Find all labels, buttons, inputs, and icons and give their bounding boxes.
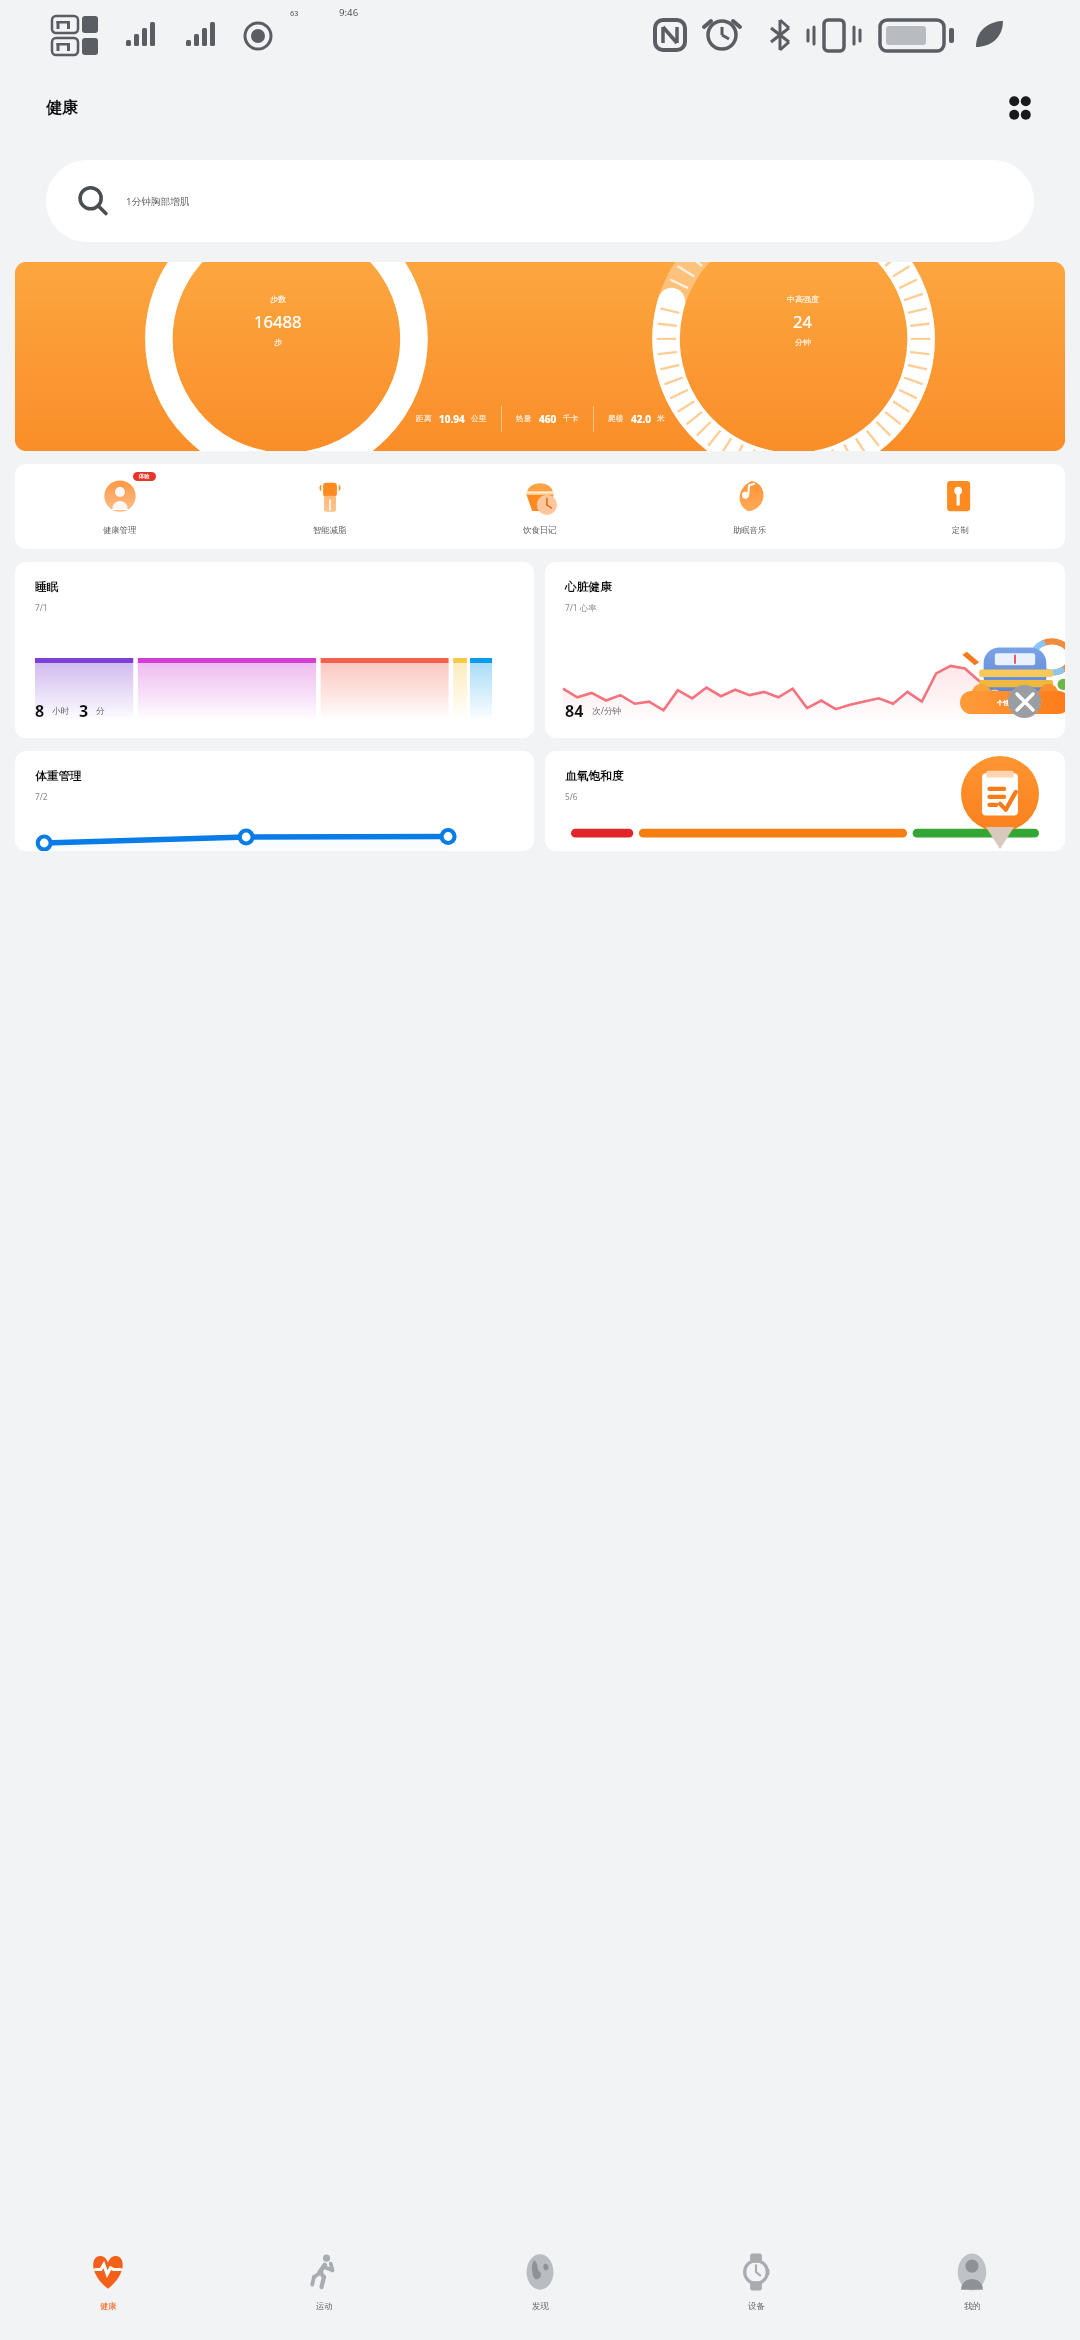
staticText: 心脏健康	[565, 580, 612, 595]
staticText: 分	[96, 706, 105, 717]
staticText: 中高强度	[787, 294, 819, 304]
button[interactable]: 设备	[648, 2222, 864, 2340]
staticText: 5/6	[565, 791, 578, 802]
staticText: 健康	[46, 98, 78, 118]
staticText: 次/分钟	[592, 705, 622, 717]
button[interactable]: 定制	[855, 475, 1065, 549]
staticText: 智能减脂	[313, 525, 347, 535]
staticText: 24	[793, 310, 813, 333]
staticText: 10.94	[439, 412, 465, 426]
staticText: 爬楼	[608, 414, 624, 424]
button[interactable]: 运动	[216, 2222, 432, 2340]
button[interactable]: 智能减脂	[225, 475, 435, 549]
staticText: 1分钟胸部增肌	[126, 195, 190, 208]
staticText: 63	[290, 8, 299, 18]
button[interactable]: Health survey	[961, 756, 1039, 851]
staticText: 小时	[52, 706, 70, 717]
button[interactable]: Close ad	[1008, 685, 1041, 718]
button[interactable]: 体验	[15, 475, 225, 549]
staticText: 运动	[316, 2301, 333, 2311]
staticText: 7/1 心率	[565, 602, 597, 613]
button[interactable]: 助眠音乐	[645, 475, 855, 549]
button[interactable]: 体重管理	[15, 751, 534, 851]
staticText: 公里	[471, 414, 487, 424]
staticText: 步	[274, 337, 282, 347]
staticText: 42.0	[631, 412, 651, 426]
staticText: 3	[79, 700, 89, 722]
staticText: 7/1	[35, 602, 48, 613]
staticText: 助眠音乐	[733, 525, 767, 535]
staticText: 8	[35, 700, 45, 722]
staticText: 16488	[254, 310, 302, 333]
staticText: 460	[539, 412, 557, 426]
staticText: 我的	[964, 2301, 981, 2311]
staticText: 千卡	[563, 414, 579, 424]
staticText: 饮食日记	[523, 525, 557, 535]
button[interactable]: 个性减脂计划	[960, 691, 1065, 714]
staticText: 健康	[100, 2301, 117, 2311]
staticText: 定制	[952, 525, 969, 535]
staticText: 发现	[532, 2301, 549, 2311]
staticText: 84	[565, 700, 584, 722]
button[interactable]: 步数	[15, 262, 1065, 451]
button[interactable]: 发现	[432, 2222, 648, 2340]
staticText: 设备	[748, 2301, 765, 2311]
button[interactable]: 1分钟胸部增肌	[46, 160, 1034, 242]
button[interactable]: 我的	[864, 2222, 1080, 2340]
staticText: 步数	[270, 294, 286, 304]
staticText: 健康管理	[103, 525, 137, 535]
staticText: 睡眠	[35, 580, 59, 595]
button[interactable]: 睡眠	[15, 562, 534, 738]
staticText: 米	[657, 414, 665, 424]
button[interactable]: 心脏健康	[545, 562, 1065, 738]
staticText: 体重管理	[35, 769, 82, 784]
staticText: 距离	[416, 414, 432, 424]
staticText: 个性减脂计划	[997, 699, 1033, 707]
staticText: 热量	[516, 414, 532, 424]
staticText: 体验	[139, 473, 150, 480]
staticText: 血氧饱和度	[565, 769, 624, 784]
button[interactable]: More options	[994, 82, 1046, 134]
staticText: 分钟	[795, 337, 811, 347]
button[interactable]: 饮食日记	[435, 475, 645, 549]
button[interactable]: 血氧饱和度	[545, 751, 1065, 851]
staticText: 7/2	[35, 791, 48, 802]
staticText: 9:46	[339, 6, 359, 19]
button[interactable]: 健康	[0, 2222, 216, 2340]
